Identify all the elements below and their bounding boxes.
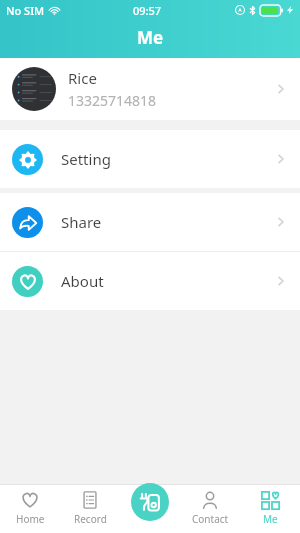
button[interactable]: Home <box>0 484 60 533</box>
staticText: Contact <box>192 512 229 526</box>
staticText: Share <box>61 212 102 232</box>
staticText: Rice <box>68 68 97 88</box>
button[interactable]: Rice <box>0 58 300 120</box>
staticText: Record <box>74 512 107 526</box>
button[interactable]: Setting <box>0 130 300 188</box>
button[interactable]: Share <box>0 193 300 251</box>
staticText: Home <box>16 512 45 526</box>
staticText: 09:57 <box>133 3 162 18</box>
staticText: About <box>61 271 104 291</box>
button[interactable]: Contact <box>180 484 240 533</box>
staticText: Me <box>137 26 164 49</box>
staticText: 13325714818 <box>68 91 157 110</box>
staticText: Setting <box>61 149 111 169</box>
button[interactable]: Measure <box>131 483 169 521</box>
button[interactable]: Record <box>60 484 120 533</box>
button[interactable]: Me <box>240 484 300 533</box>
staticText: Me <box>263 512 278 526</box>
staticText: No SIM <box>6 3 45 18</box>
button[interactable]: About <box>0 252 300 310</box>
